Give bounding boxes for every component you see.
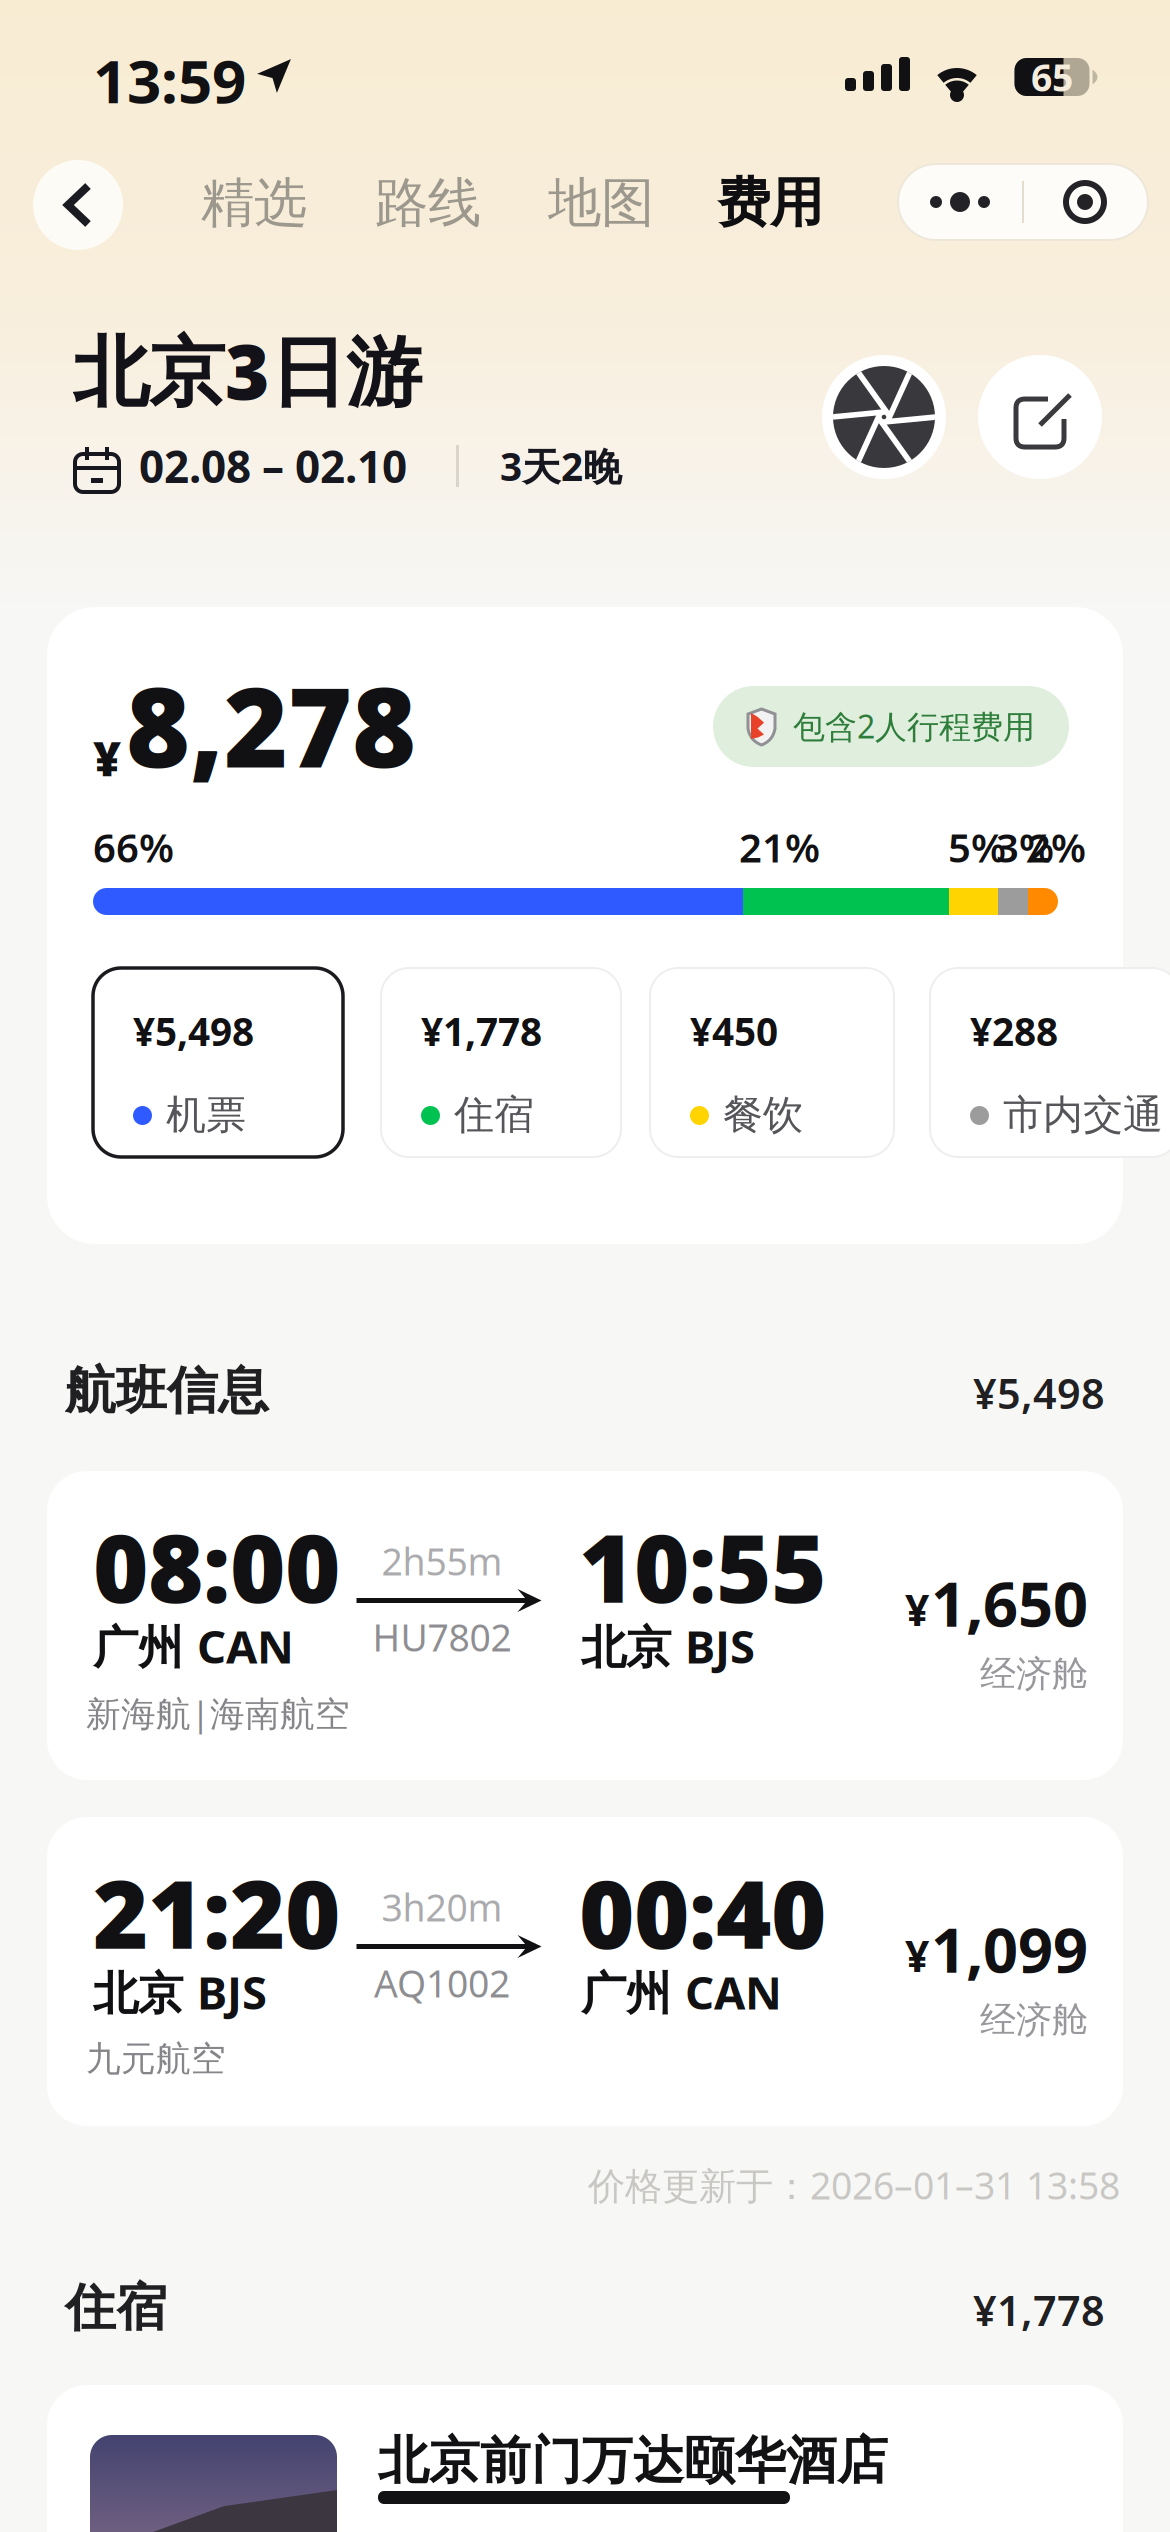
staticText: ¥450 — [690, 1005, 778, 1057]
staticText: 经济舱 — [980, 1652, 1088, 1696]
staticText: 包含2人行程费用 — [793, 705, 1035, 747]
staticText: 66% — [93, 820, 174, 873]
staticText: ¥288 — [970, 1005, 1058, 1057]
button[interactable] — [898, 164, 1022, 240]
button[interactable]: 费用 — [690, 168, 850, 238]
staticText: 餐饮 — [723, 1090, 803, 1139]
staticText: 经济舱 — [980, 1998, 1088, 2042]
staticText: 2% — [1028, 820, 1086, 873]
staticText: 地图 — [548, 170, 654, 236]
staticText: 机票 — [166, 1090, 246, 1139]
button[interactable]: ¥450 — [650, 968, 894, 1157]
button[interactable]: 21:20 — [47, 1817, 1123, 2126]
staticText: ¥ — [905, 1581, 929, 1638]
staticText: 费用 — [717, 170, 823, 236]
button[interactable]: 08:00 — [47, 1471, 1123, 1780]
staticText: 02.08 – 02.10 — [139, 437, 407, 495]
staticText: 21:20 — [93, 1849, 340, 1975]
button[interactable]: 精选 — [174, 168, 334, 238]
staticText: 九元航空 — [86, 2038, 226, 2080]
staticText: 住宿 — [65, 2277, 167, 2339]
staticText: 广州 CAN — [581, 1962, 782, 2022]
staticText: 价格更新于：2026–01–31 13:58 — [588, 2160, 1120, 2210]
staticText: HU7802 — [372, 1612, 511, 1662]
staticText: 2h55m — [381, 1536, 502, 1586]
button[interactable]: ¥1,778 — [381, 968, 621, 1157]
staticText: 10:55 — [579, 1503, 826, 1629]
button[interactable] — [978, 355, 1102, 479]
button[interactable] — [33, 160, 123, 250]
staticText: 精选 — [201, 170, 307, 236]
button[interactable]: 包含2人行程费用 — [713, 686, 1069, 767]
staticText: 市内交通 — [1003, 1090, 1163, 1139]
staticText: 8,278 — [126, 652, 416, 798]
staticText: ¥1,778 — [421, 1005, 542, 1057]
staticText: 北京 BJS — [93, 1962, 267, 2022]
staticText: 13:59 — [93, 40, 246, 120]
button[interactable]: 地图 — [521, 168, 681, 238]
button[interactable] — [1022, 164, 1148, 240]
staticText: 3h20m — [381, 1882, 502, 1932]
button[interactable]: 路线 — [348, 168, 508, 238]
staticText: 21% — [739, 820, 820, 873]
staticText: 北京前门万达颐华酒店 — [378, 2430, 888, 2492]
staticText: ¥5,498 — [973, 1366, 1105, 1420]
staticText: 路线 — [375, 170, 481, 236]
button[interactable]: 北京前门万达颐华酒店 — [47, 2385, 1123, 2532]
staticText: 1,650 — [931, 1562, 1088, 1644]
staticText: 北京 BJS — [581, 1616, 755, 1676]
staticText: 新海航|海南航空 — [86, 1690, 350, 1736]
staticText: 1,099 — [931, 1908, 1088, 1990]
staticText: ¥1,778 — [973, 2283, 1105, 2337]
staticText: AQ1002 — [374, 1958, 510, 2008]
staticText: 3% — [996, 820, 1054, 873]
staticText: 北京3日游 — [73, 319, 422, 420]
button[interactable]: ¥288 — [930, 968, 1170, 1157]
staticText: ¥5,498 — [133, 1005, 254, 1057]
staticText: 08:00 — [93, 1503, 340, 1629]
staticText: 广州 CAN — [93, 1616, 294, 1676]
button[interactable]: ¥5,498 — [93, 968, 343, 1157]
staticText: 5% — [948, 820, 1006, 873]
staticText: ¥ — [905, 1927, 929, 1984]
button[interactable] — [822, 355, 946, 479]
staticText: 3天2晚 — [500, 440, 622, 492]
staticText: 65 — [1031, 52, 1073, 102]
staticText: 00:40 — [579, 1849, 826, 1975]
staticText: 住宿 — [454, 1090, 534, 1139]
staticText: 航班信息 — [65, 1360, 269, 1422]
staticText: ¥ — [93, 726, 121, 790]
